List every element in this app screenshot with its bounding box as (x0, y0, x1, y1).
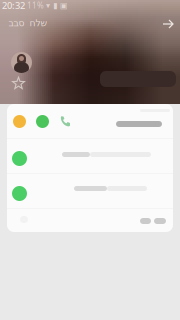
staticText: ▾ ▮ ▣ (46, 1, 68, 10)
button[interactable]: App two (36, 115, 49, 128)
button[interactable]: שלח (29, 19, 47, 27)
button[interactable]: Contact one (12, 151, 27, 166)
staticText: סבב (8, 18, 24, 28)
button[interactable]: Contact two (12, 186, 27, 201)
button[interactable]: Send (154, 218, 166, 224)
button[interactable]: Favourite (12, 77, 25, 90)
button[interactable]: Cancel (140, 218, 151, 224)
button[interactable]: Forward (162, 18, 175, 30)
button[interactable]: Call (59, 115, 72, 128)
button[interactable]: Profile (11, 52, 32, 73)
button[interactable]: App one (13, 115, 26, 128)
staticText: 11% (27, 0, 44, 11)
staticText: 20:32 (2, 0, 25, 12)
button[interactable]: סבב (8, 19, 24, 27)
staticText: שלח (29, 18, 47, 28)
